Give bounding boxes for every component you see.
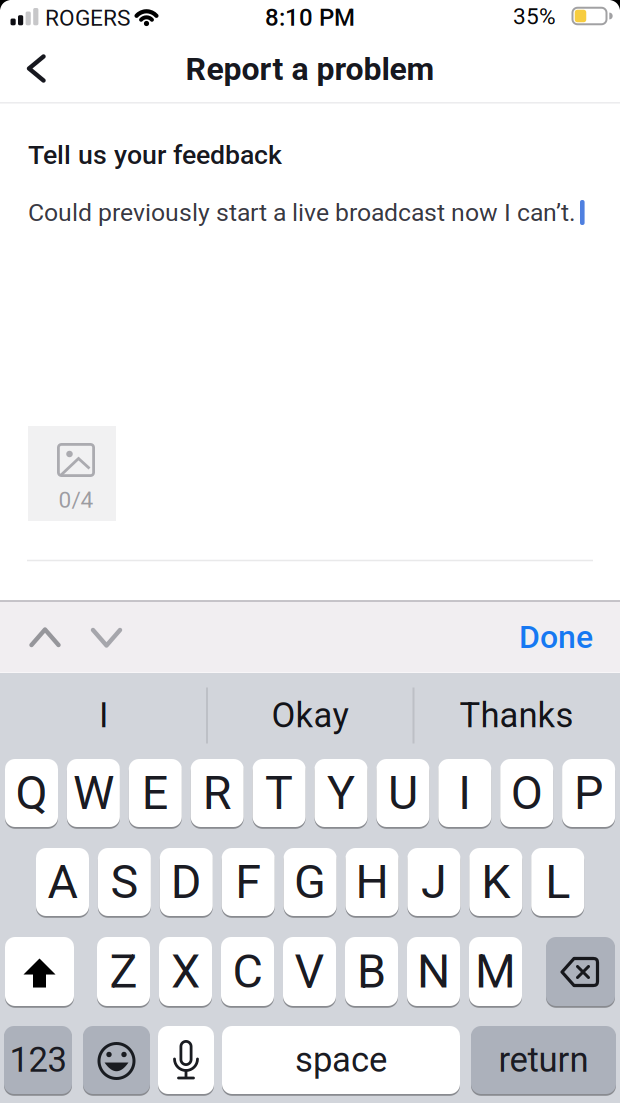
button[interactable]: Okay	[212, 673, 407, 757]
button[interactable]: G	[284, 846, 337, 918]
button[interactable]: X	[159, 935, 212, 1008]
button[interactable]: J	[407, 846, 460, 918]
button[interactable]: L	[531, 846, 584, 918]
staticText: Tell us your feedback	[28, 139, 282, 171]
button[interactable]: Y	[314, 757, 367, 829]
button[interactable]: Dictate	[158, 1024, 214, 1096]
staticText: U	[388, 766, 418, 820]
staticText: P	[574, 766, 603, 820]
staticText: 35%	[513, 3, 556, 30]
button[interactable]: R	[191, 757, 244, 829]
button[interactable]: I	[438, 757, 491, 829]
staticText: O	[511, 766, 543, 820]
button[interactable]: space	[222, 1024, 460, 1096]
staticText: I	[458, 766, 471, 820]
staticText: B	[357, 944, 386, 999]
button[interactable]: H	[345, 846, 398, 918]
button[interactable]: N	[407, 935, 460, 1008]
button[interactable]: W	[67, 757, 120, 829]
staticText: 8:10 PM	[265, 3, 355, 31]
button[interactable]: F	[222, 846, 275, 918]
button[interactable]: A	[36, 846, 89, 918]
button[interactable]: Thanks	[419, 673, 614, 757]
staticText: W	[73, 766, 114, 820]
button[interactable]: 123	[4, 1024, 72, 1096]
button[interactable]: Emoji	[83, 1024, 150, 1096]
staticText: Okay	[271, 695, 348, 736]
button[interactable]: Back	[8, 40, 64, 96]
staticText: 123	[9, 1040, 66, 1080]
button[interactable]: Previous field	[20, 612, 70, 662]
staticText: space	[295, 1040, 387, 1080]
staticText: G	[294, 855, 326, 909]
button[interactable]: Done	[473, 607, 593, 667]
staticText: H	[355, 855, 388, 909]
button[interactable]: Delete	[546, 935, 615, 1008]
button[interactable]: Next field	[81, 612, 131, 662]
button[interactable]: K	[469, 846, 522, 918]
staticText: Thanks	[459, 695, 573, 736]
staticText: T	[265, 766, 293, 820]
button[interactable]: Z	[97, 935, 150, 1008]
staticText: N	[417, 944, 450, 999]
button[interactable]: T	[253, 757, 306, 829]
button[interactable]: return	[471, 1024, 616, 1096]
button[interactable]: M	[469, 935, 522, 1008]
staticText: Z	[109, 944, 137, 999]
staticText: D	[171, 855, 202, 909]
button[interactable]: Q	[5, 757, 58, 829]
button[interactable]: Attach screenshots	[28, 426, 116, 521]
staticText: I	[99, 695, 108, 736]
button[interactable]: D	[160, 846, 213, 918]
button[interactable]: B	[345, 935, 398, 1008]
button[interactable]: P	[562, 757, 615, 829]
staticText: R	[203, 766, 232, 820]
staticText: A	[47, 855, 77, 909]
button[interactable]: O	[500, 757, 553, 829]
staticText: Report a problem	[185, 50, 434, 88]
staticText: S	[110, 855, 138, 909]
staticText: Y	[327, 766, 355, 820]
staticText: C	[232, 944, 262, 999]
staticText: Q	[15, 766, 47, 820]
staticText: return	[498, 1040, 588, 1080]
button[interactable]: S	[98, 846, 151, 918]
staticText: Done	[519, 618, 593, 656]
staticText: V	[294, 944, 324, 999]
button[interactable]: I	[6, 673, 201, 757]
staticText: K	[481, 855, 510, 909]
button[interactable]: C	[221, 935, 274, 1008]
button[interactable]: U	[376, 757, 429, 829]
staticText: E	[142, 766, 169, 820]
staticText: F	[235, 855, 261, 909]
button[interactable]: Shift	[5, 935, 74, 1008]
button[interactable]: E	[129, 757, 182, 829]
staticText: ROGERS	[45, 5, 130, 31]
staticText: J	[421, 855, 447, 909]
staticText: L	[545, 855, 570, 909]
staticText: 0/4	[58, 487, 93, 513]
button[interactable]: V	[283, 935, 336, 1008]
staticText: X	[171, 944, 200, 999]
staticText: Could previously start a live broadcast …	[28, 198, 576, 227]
staticText: M	[475, 944, 516, 999]
